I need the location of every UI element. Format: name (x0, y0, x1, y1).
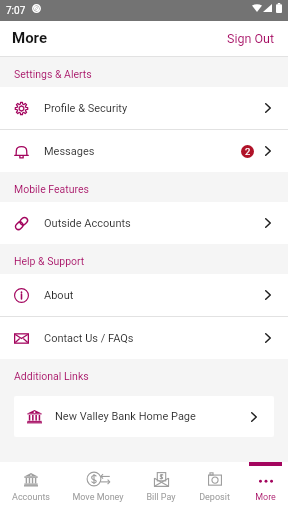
staticText: Settings & Alerts (14, 68, 92, 80)
staticText: Messages (44, 145, 95, 158)
button[interactable]: Profile & Security (0, 87, 288, 129)
staticText: Mobile Features (14, 183, 89, 195)
staticText: Help & Support (14, 255, 85, 267)
staticText: 2 (245, 146, 251, 157)
button[interactable]: New Valley Bank Home Page (14, 396, 274, 437)
staticText: Outside Accounts (44, 217, 131, 230)
staticText: 7:07 (6, 5, 26, 17)
staticText: New Valley Bank Home Page (55, 410, 196, 423)
button[interactable]: Deposit (187, 462, 242, 512)
staticText: Additional Links (14, 370, 89, 382)
button[interactable]: More (242, 462, 288, 512)
staticText: Accounts (12, 492, 50, 503)
button[interactable]: Accounts (0, 462, 61, 512)
staticText: Contact Us / FAQs (44, 332, 134, 345)
staticText: About (44, 289, 74, 302)
staticText: Sign Out (227, 31, 275, 46)
staticText: Move Money (72, 492, 124, 503)
button[interactable]: Messages (0, 130, 288, 172)
button[interactable]: Contact Us / FAQs (0, 317, 288, 359)
button[interactable]: Sign Out (214, 24, 288, 53)
staticText: More (255, 492, 276, 503)
staticText: More (12, 29, 48, 47)
button[interactable]: Bill Pay (134, 462, 187, 512)
button[interactable]: Move Money (61, 462, 134, 512)
staticText: Bill Pay (146, 492, 176, 503)
staticText: Deposit (199, 492, 230, 503)
staticText: Profile & Security (44, 102, 128, 115)
button[interactable]: Outside Accounts (0, 202, 288, 244)
button[interactable]: About (0, 274, 288, 316)
